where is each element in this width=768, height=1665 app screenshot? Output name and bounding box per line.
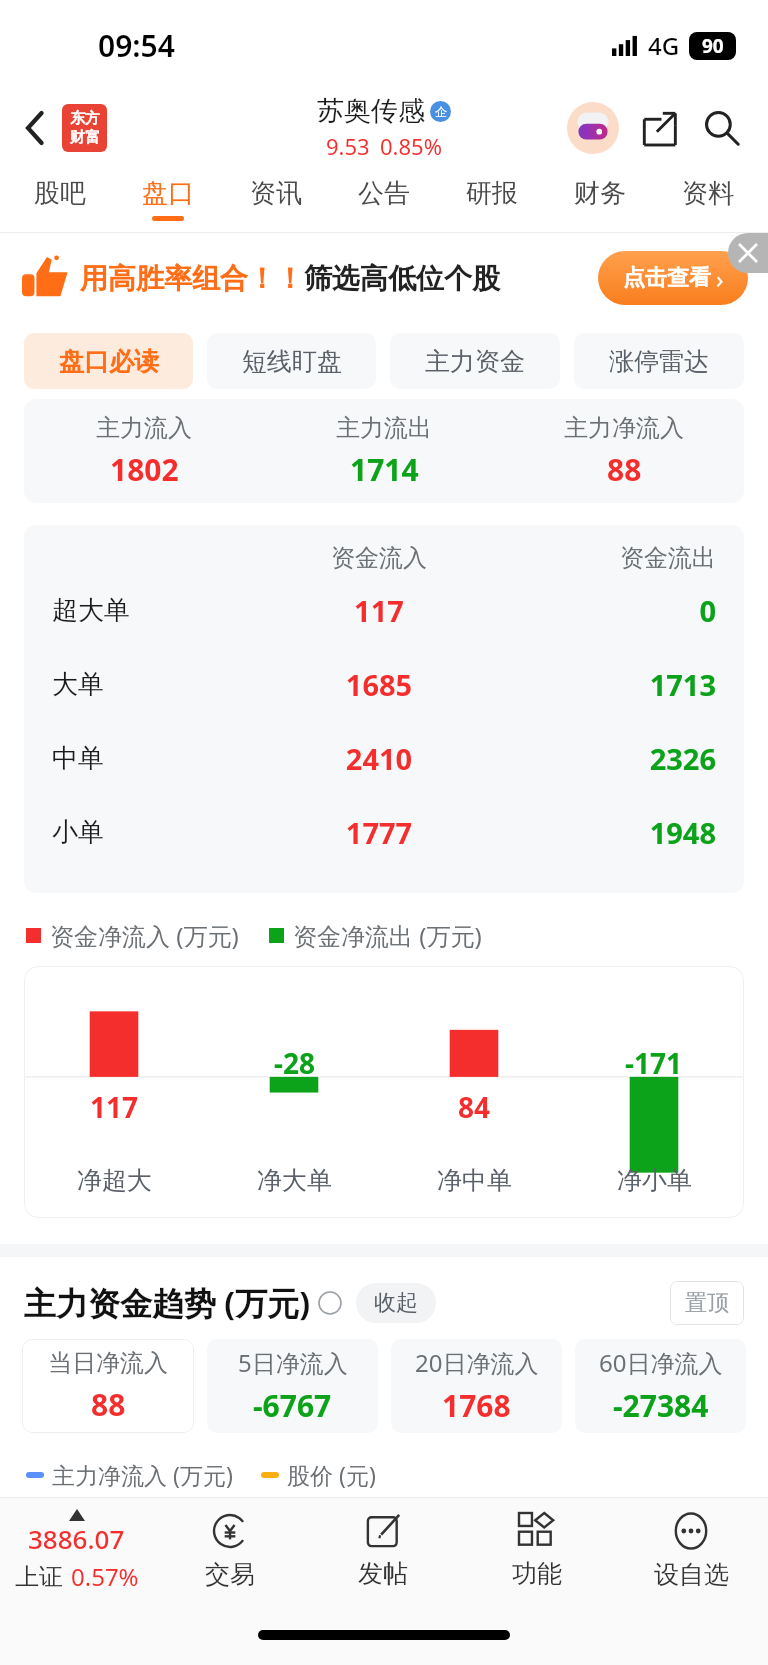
staticText: 财富 [70, 128, 100, 147]
staticText: 0 [498, 591, 716, 630]
staticText: 20日净流入 [415, 1346, 539, 1379]
button[interactable]: 东方 [62, 104, 107, 152]
button[interactable]: 资讯 [222, 165, 330, 233]
staticText: 短线盯盘 [242, 346, 342, 377]
staticText: 资金流入 [260, 543, 498, 573]
staticText: -27384 [613, 1385, 709, 1426]
staticText: 主力流入 [96, 413, 192, 443]
button[interactable]: 公告 [330, 165, 438, 233]
button[interactable]: 功能 [460, 1497, 614, 1605]
button[interactable]: 股吧 [6, 165, 114, 233]
staticText: 资金流出 [498, 543, 716, 573]
staticText: 88 [91, 1384, 126, 1425]
button[interactable]: 短线盯盘 [207, 333, 376, 389]
staticText: 88 [607, 449, 642, 490]
button[interactable]: 主力资金 [390, 333, 560, 389]
button[interactable]: 盘口 [114, 165, 222, 233]
staticText: 净中单 [437, 1165, 512, 1196]
staticText: 90 [702, 33, 724, 59]
staticText: 点击查看 [623, 264, 711, 292]
button[interactable]: 盘口必读 [24, 333, 193, 389]
staticText: 9.54 [32, 1506, 74, 1535]
staticText: 资料 [682, 177, 734, 210]
button[interactable]: Back [14, 106, 58, 150]
button[interactable]: 苏奥传感 [317, 94, 451, 161]
button[interactable]: Search [696, 102, 748, 154]
button[interactable]: 交易 [153, 1497, 306, 1605]
staticText: 主力资金趋势 (万元) [24, 1281, 311, 1325]
staticText: 小单 [52, 816, 260, 849]
staticText: 主力净流入 [564, 413, 684, 443]
staticText: 9.53 [326, 131, 370, 161]
button[interactable]: Share [634, 103, 684, 153]
button[interactable]: 涨停雷达 [574, 333, 744, 389]
staticText: 主力资金 [425, 346, 525, 377]
staticText: 东方 [70, 109, 100, 128]
button[interactable]: 60日净流入 [575, 1339, 746, 1433]
staticText: -171 [625, 1044, 683, 1082]
staticText: 主力净流入 (万元) [52, 1459, 233, 1490]
staticText: 117 [260, 591, 498, 630]
staticText: 主力流出 [336, 413, 432, 443]
button[interactable]: 3886.07 [0, 1497, 153, 1605]
staticText: 84 [458, 1088, 491, 1126]
staticText: 涨停雷达 [609, 346, 709, 377]
staticText: -6767 [253, 1385, 332, 1426]
staticText: 1777 [260, 813, 498, 852]
staticText: 2326 [498, 739, 716, 778]
staticText: 3886.07 [28, 1521, 125, 1556]
button[interactable]: 20日净流入 [391, 1339, 562, 1433]
staticText: 0.85% [380, 131, 442, 161]
button[interactable]: 资料 [654, 165, 762, 233]
button[interactable]: Close [728, 233, 768, 273]
staticText: 资金净流入 (万元) [50, 919, 239, 952]
button[interactable]: 发帖 [306, 1497, 460, 1605]
staticText: 股价 (元) [287, 1459, 376, 1490]
button[interactable]: 当日净流入 [22, 1339, 194, 1433]
staticText: 交易 [205, 1559, 255, 1590]
staticText: 60日净流入 [599, 1346, 723, 1379]
staticText: 2410 [260, 739, 498, 778]
button[interactable]: AI assistant [566, 101, 620, 155]
staticText: 研报 [466, 177, 518, 210]
button[interactable]: 用高胜率组合！！ [22, 233, 748, 323]
staticText: 股吧 [34, 177, 86, 210]
staticText: 企 [435, 104, 447, 119]
staticText: 公告 [358, 177, 410, 210]
staticText: 大单 [52, 668, 260, 701]
staticText: 5日净流入 [238, 1346, 348, 1379]
staticText: 财务 [574, 177, 626, 210]
staticText: 置顶 [685, 1289, 729, 1317]
staticText: 收起 [374, 1289, 418, 1317]
button[interactable]: 5日净流入 [207, 1339, 378, 1433]
staticText: 苏奥传感 [317, 94, 425, 128]
staticText: 功能 [512, 1558, 562, 1589]
staticText: 1685 [260, 665, 498, 704]
staticText: 中单 [52, 742, 260, 775]
staticText: 盘口 [142, 177, 194, 210]
staticText: 设自选 [654, 1559, 729, 1590]
staticText: 1802 [110, 449, 179, 490]
button[interactable]: 点击查看 [598, 251, 748, 305]
button[interactable]: 设自选 [614, 1497, 768, 1605]
button[interactable]: 研报 [438, 165, 546, 233]
staticText: 资讯 [250, 177, 302, 210]
staticText: 1948 [498, 813, 716, 852]
staticText: 用高胜率组合！！ [80, 261, 304, 296]
staticText: 1768 [442, 1385, 511, 1426]
button[interactable]: 收起 [356, 1283, 436, 1323]
button[interactable]: 置顶 [670, 1281, 744, 1325]
staticText: -28 [274, 1044, 315, 1082]
staticText: 发帖 [358, 1558, 408, 1589]
button[interactable]: 财务 [546, 165, 654, 233]
staticText: 1714 [350, 449, 419, 490]
staticText: 4G [648, 29, 680, 62]
staticText: 当日净流入 [48, 1348, 168, 1378]
staticText: 资金净流出 (万元) [293, 919, 482, 952]
staticText: 净大单 [257, 1165, 332, 1196]
staticText: 超大单 [52, 594, 260, 627]
staticText: 净小单 [617, 1165, 692, 1196]
staticText: 117 [90, 1088, 139, 1126]
staticText: 净超大 [77, 1165, 152, 1196]
staticText: 1713 [498, 665, 716, 704]
